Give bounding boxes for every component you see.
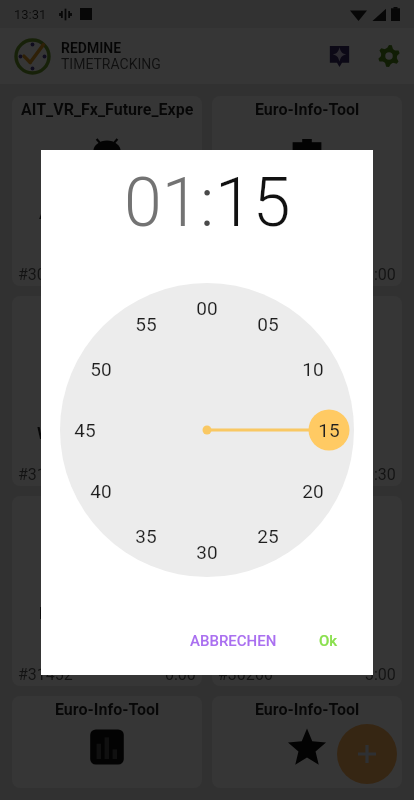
staticText: AIT_VR_Fx_Future_Expe — [21, 100, 194, 119]
button[interactable]: Demo Projekt — [12, 296, 202, 486]
staticText: Kleine Aufgabe — [249, 623, 366, 643]
staticText: Wiederherstellung — [37, 423, 177, 443]
staticText: #31452 — [18, 665, 73, 684]
button[interactable]: New entry — [324, 41, 354, 71]
staticText: ABBRECHEN — [190, 632, 277, 650]
staticText: Interne Grafik — [256, 643, 358, 663]
staticText: Feature Umbau — [249, 403, 366, 423]
staticText: Interne Grafik — [256, 443, 358, 463]
staticText: 13:31 — [14, 7, 47, 22]
staticText: Pflege Datenbank — [39, 603, 175, 623]
button[interactable]: ABBRECHEN — [182, 626, 285, 656]
staticText: Euro-Info-Tool — [255, 300, 360, 319]
button[interactable]: Add entry — [337, 724, 397, 784]
staticText: Anpassungen im — [243, 203, 371, 223]
staticText: Axialkolbenverdic — [39, 203, 176, 223]
staticText: 55 — [135, 313, 157, 335]
button[interactable]: Settings — [374, 41, 404, 71]
staticText: Euro-Info-Tool — [55, 700, 160, 719]
staticText: 3:00 — [365, 665, 396, 684]
staticText: 10 — [302, 358, 324, 380]
button[interactable]: Euro-Info-Tool — [212, 696, 402, 788]
staticText: Euro-Info-Tool — [255, 500, 360, 519]
staticText: #30266 — [218, 665, 273, 684]
staticText: #30172 — [18, 265, 73, 284]
staticText: 25 — [257, 525, 279, 547]
staticText: 05 — [257, 313, 279, 335]
staticText: 00 — [196, 297, 218, 319]
staticText: Euro-Info-Tool — [255, 100, 360, 119]
staticText: 50 — [90, 358, 112, 380]
staticText: 40 — [90, 480, 112, 502]
staticText: Dokumentation — [49, 403, 166, 423]
staticText: #31021 — [18, 465, 73, 484]
staticText: 45 — [74, 419, 96, 441]
button[interactable]: Euro-Info-Tool — [212, 96, 402, 286]
staticText: REDMINE — [61, 40, 122, 56]
staticText: Ok — [319, 632, 338, 650]
staticText: Euro-Info-Tool — [255, 700, 360, 719]
button[interactable]: AIT_VR_Fx_Future_Expe — [12, 96, 202, 286]
staticText: modul erstellen — [48, 223, 167, 243]
staticText: 0:00 — [165, 665, 196, 684]
button[interactable]: Projekt X — [12, 496, 202, 686]
staticText: 35 — [135, 525, 157, 547]
staticText: 20 — [302, 480, 324, 502]
staticText: 15 — [318, 419, 340, 441]
staticText: Backend Bereich — [243, 223, 372, 243]
staticText: TIMETRACKING — [61, 56, 161, 72]
button[interactable]: Euro-Info-Tool — [12, 696, 202, 788]
button[interactable]: Ok — [311, 626, 346, 656]
staticText: Projekt X — [74, 500, 140, 519]
button[interactable]: Euro-Info-Tool — [212, 496, 402, 686]
staticText: 15 — [215, 163, 291, 243]
staticText: 0:30 — [365, 465, 396, 484]
button[interactable]: Euro-Info-Tool — [212, 296, 402, 486]
staticText: Neue Ansichten — [247, 423, 368, 443]
staticText: : — [200, 163, 215, 243]
staticText: Demo Projekt — [58, 300, 156, 319]
staticText: 1:00 — [365, 265, 396, 284]
staticText: Interne Arbeiten — [47, 443, 168, 463]
staticText: 30 — [196, 541, 218, 563]
staticText: 01 — [124, 163, 200, 243]
